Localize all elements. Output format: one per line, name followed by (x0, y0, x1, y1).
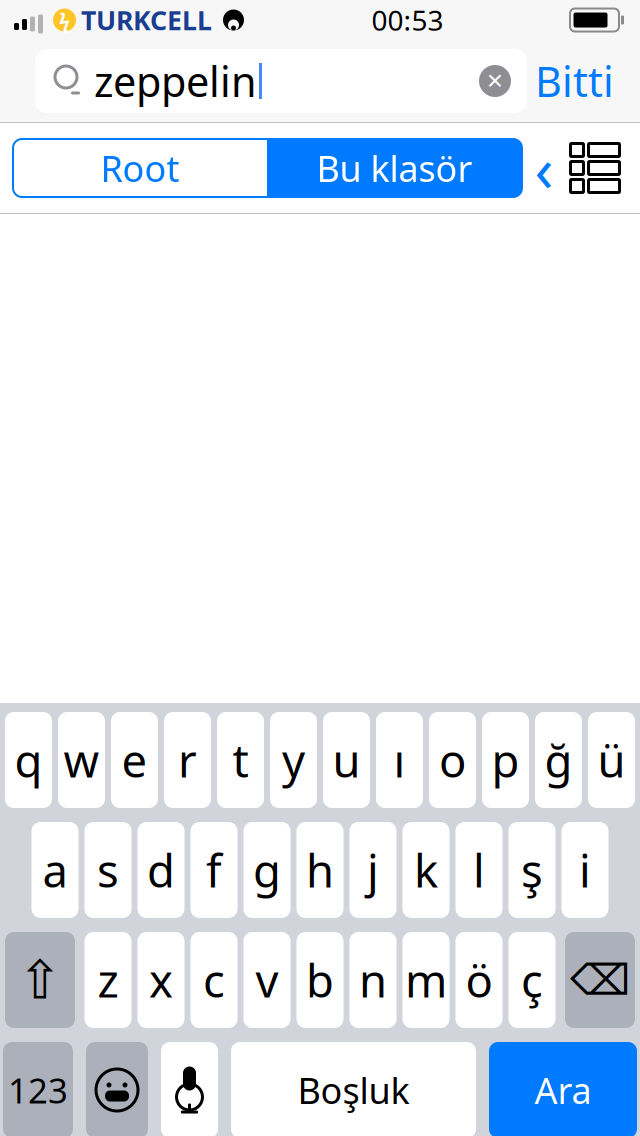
staticText: Ara (534, 1066, 591, 1114)
button[interactable]: Görünümü değiştir (566, 139, 624, 197)
staticText: ⌫ (570, 956, 630, 1004)
button[interactable]: c (190, 932, 237, 1028)
staticText: i (579, 840, 591, 900)
button[interactable]: p (482, 712, 529, 808)
staticText: c (203, 950, 225, 1010)
button[interactable]: t (217, 712, 264, 808)
staticText: n (359, 950, 387, 1010)
button[interactable]: i (561, 822, 608, 918)
staticText: zeppelin (94, 54, 257, 108)
button[interactable]: h (296, 822, 343, 918)
staticText: ç (521, 950, 543, 1010)
button[interactable]: ö (455, 932, 502, 1028)
staticText: q (14, 730, 42, 790)
staticText: v (255, 950, 278, 1010)
button[interactable]: g (243, 822, 290, 918)
staticText: e (121, 730, 147, 790)
button[interactable]: q (5, 712, 52, 808)
button[interactable]: e (111, 712, 158, 808)
button[interactable]: zeppelin (35, 49, 527, 113)
button[interactable]: s (84, 822, 131, 918)
staticText: ğ (544, 730, 572, 790)
button[interactable]: ç (508, 932, 555, 1028)
button[interactable]: r (164, 712, 211, 808)
button[interactable]: a (31, 822, 78, 918)
button[interactable]: x (137, 932, 184, 1028)
staticText: Root (100, 144, 179, 192)
button[interactable]: w (58, 712, 105, 808)
staticText: f (206, 840, 222, 900)
button[interactable]: Bitti (527, 49, 622, 113)
button[interactable]: Ara (489, 1042, 637, 1136)
button[interactable]: l (455, 822, 502, 918)
button[interactable]: v (243, 932, 290, 1028)
staticText: ü (597, 730, 625, 790)
staticText: z (97, 950, 118, 1010)
staticText: Boşluk (297, 1066, 409, 1114)
button[interactable]: Emoji (86, 1042, 148, 1136)
button[interactable]: n (349, 932, 396, 1028)
staticText: s (97, 840, 119, 900)
staticText: d (147, 840, 175, 900)
button[interactable]: u (323, 712, 370, 808)
staticText: ş (521, 840, 543, 900)
staticText: b (306, 950, 334, 1010)
button[interactable]: Büyük harf (5, 932, 75, 1028)
staticText: w (63, 730, 99, 790)
button[interactable]: Root (13, 139, 267, 197)
staticText: g (253, 840, 281, 900)
staticText: j (367, 840, 379, 900)
staticText: 00:53 (371, 1, 443, 39)
staticText: ✕ (486, 69, 504, 93)
button[interactable]: ğ (535, 712, 582, 808)
staticText: ⇧ (17, 950, 62, 1010)
button[interactable]: m (402, 932, 449, 1028)
staticText: o (439, 730, 466, 790)
staticText: p (491, 730, 519, 790)
button[interactable]: ı (376, 712, 423, 808)
staticText: l (473, 840, 485, 900)
staticText: k (414, 840, 438, 900)
staticText: t (232, 730, 248, 790)
staticText: u (332, 730, 360, 790)
staticText: ‹ (534, 127, 553, 209)
staticText: r (178, 730, 197, 790)
staticText: Bu klasör (316, 144, 472, 192)
staticText: TURKCELL (81, 2, 212, 38)
button[interactable]: ü (588, 712, 635, 808)
staticText: ı (393, 730, 405, 790)
button[interactable]: Sil (565, 932, 635, 1028)
staticText: ϟ (59, 7, 70, 33)
button[interactable]: b (296, 932, 343, 1028)
button[interactable]: o (429, 712, 476, 808)
button[interactable]: d (137, 822, 184, 918)
button[interactable]: Boşluk (231, 1042, 476, 1136)
button[interactable]: y (270, 712, 317, 808)
staticText: m (405, 950, 447, 1010)
button[interactable]: j (349, 822, 396, 918)
staticText: h (306, 840, 334, 900)
button[interactable]: Dikte (161, 1042, 218, 1136)
staticText: 123 (8, 1067, 68, 1113)
button[interactable]: z (84, 932, 131, 1028)
button[interactable]: ş (508, 822, 555, 918)
staticText: ö (465, 950, 492, 1010)
button[interactable]: Geri (522, 139, 566, 197)
button[interactable]: k (402, 822, 449, 918)
staticText: y (282, 730, 305, 790)
button[interactable]: f (190, 822, 237, 918)
staticText: a (42, 840, 67, 900)
button[interactable]: Bu klasör (267, 139, 522, 197)
staticText: x (149, 950, 173, 1010)
button[interactable]: 123 (3, 1042, 73, 1136)
staticText: Bitti (535, 54, 614, 108)
